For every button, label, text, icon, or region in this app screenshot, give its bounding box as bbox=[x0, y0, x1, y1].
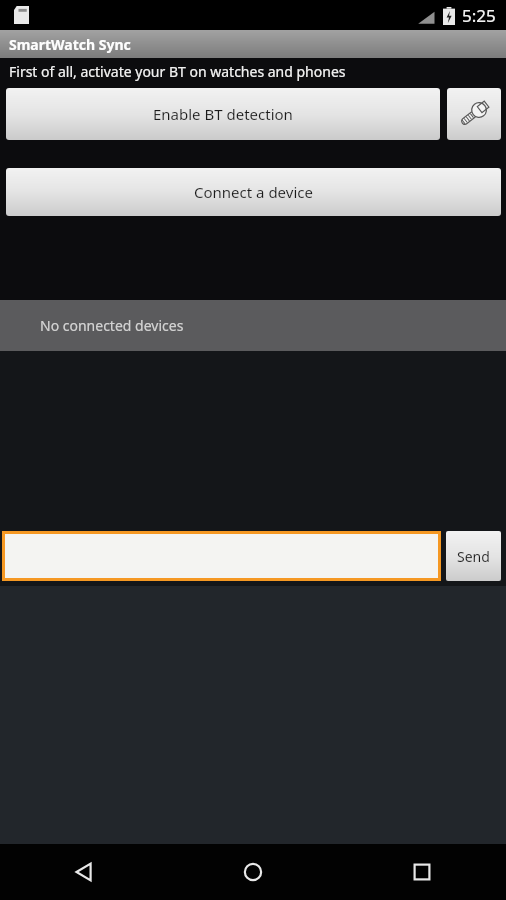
staticText: First of all, activate your BT on watche… bbox=[9, 62, 346, 81]
button[interactable]: Connect a device bbox=[6, 168, 501, 216]
staticText: SmartWatch Sync bbox=[9, 35, 131, 54]
button[interactable]: Home bbox=[168, 844, 337, 900]
staticText: Connect a device bbox=[194, 182, 313, 202]
staticText: Send bbox=[457, 547, 490, 566]
button[interactable]: Settings bbox=[447, 88, 501, 140]
staticText: No connected devices bbox=[40, 316, 184, 335]
button[interactable]: No connected devices bbox=[0, 300, 506, 351]
staticText: Enable BT detection bbox=[153, 104, 293, 124]
button[interactable]: Recents bbox=[337, 844, 506, 900]
button[interactable]: Back bbox=[0, 844, 168, 900]
button[interactable]: Enable BT detection bbox=[6, 88, 440, 140]
button[interactable]: Send bbox=[446, 531, 501, 581]
staticText: 5:25 bbox=[462, 4, 496, 27]
